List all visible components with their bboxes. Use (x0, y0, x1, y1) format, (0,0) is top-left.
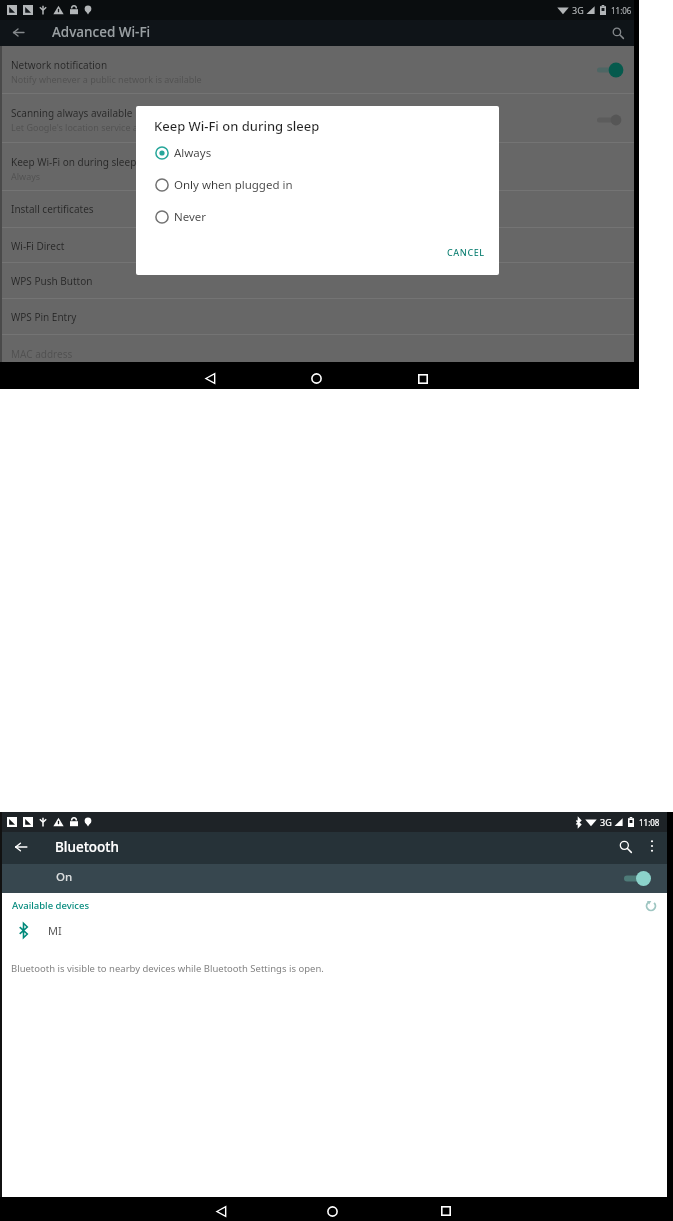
staticText: MAC address (11, 347, 73, 361)
staticText: Wi-Fi Direct (11, 239, 65, 253)
button: Keep Wi-Fi on during sleep (136, 106, 499, 275)
button[interactable]: Always (136, 137, 499, 169)
button[interactable]: On (0, 864, 667, 893)
staticText: Notify whenever a public network is avai… (11, 73, 202, 85)
staticText: 3G (572, 4, 584, 16)
staticText: Bluetooth is visible to nearby devices w… (11, 962, 324, 975)
button[interactable]: Never (136, 201, 499, 233)
staticText: Available devices (12, 899, 90, 912)
button[interactable]: More options (638, 832, 665, 860)
button[interactable]: Back (196, 365, 224, 392)
staticText: WPS Pin Entry (11, 310, 77, 324)
button[interactable]: Keep Wi-Fi on during sleep (0, 143, 639, 191)
staticText: Only when plugged in (174, 177, 293, 193)
staticText: WPS Push Button (11, 274, 93, 288)
button[interactable]: Install certificates (0, 191, 639, 228)
button[interactable]: Search (605, 20, 631, 45)
button[interactable]: Wi-Fi Direct (0, 228, 639, 263)
button[interactable]: MI (0, 917, 667, 943)
staticText: Never (174, 209, 207, 225)
staticText: On (56, 869, 73, 885)
button[interactable]: Home (302, 365, 330, 392)
button[interactable]: Only when plugged in (136, 169, 499, 201)
staticText: Always (174, 145, 212, 161)
staticText: 11:08 (639, 817, 660, 828)
staticText: Bluetooth (55, 838, 119, 856)
staticText: Keep Wi-Fi on during sleep (154, 117, 320, 135)
staticText: Always (11, 170, 41, 182)
button[interactable]: WPS Push Button (0, 263, 639, 299)
button[interactable]: Back (207, 1199, 235, 1221)
staticText: MI (48, 923, 62, 938)
staticText: Network notification (11, 58, 108, 72)
staticText: 3G (600, 816, 612, 828)
staticText: Scanning always available (11, 106, 133, 120)
button[interactable]: CANCEL (439, 240, 493, 264)
button[interactable]: Network notification (0, 46, 639, 94)
button[interactable]: Refresh (639, 894, 663, 918)
staticText: Keep Wi-Fi on during sleep (11, 155, 137, 169)
button[interactable]: WPS Pin Entry (0, 299, 639, 335)
staticText: Advanced Wi-Fi (52, 23, 151, 41)
button[interactable]: Scanning always available (0, 94, 639, 143)
staticText: 11:06 (611, 5, 632, 16)
staticText: Install certificates (11, 202, 94, 216)
button[interactable]: Recent apps (432, 1199, 460, 1221)
staticText: Let Google's location service and other … (11, 121, 219, 133)
button[interactable]: Navigate up (7, 833, 35, 861)
button[interactable]: Search (611, 832, 639, 860)
button[interactable]: Home (318, 1199, 346, 1221)
button[interactable]: MAC address (0, 335, 639, 362)
staticText: CANCEL (447, 246, 485, 258)
button[interactable]: Recent apps (409, 365, 437, 392)
button[interactable]: Navigate up (5, 20, 32, 45)
